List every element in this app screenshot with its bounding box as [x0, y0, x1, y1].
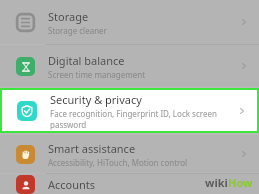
staticText: wiki — [205, 175, 228, 190]
staticText: How — [228, 175, 253, 190]
button[interactable]: Storage — [0, 0, 259, 44]
button[interactable]: Digital balance — [0, 45, 259, 87]
staticText: Storage — [48, 9, 89, 24]
staticText: Screen time management — [48, 69, 146, 80]
button[interactable]: Accounts — [0, 174, 259, 194]
button[interactable]: Smart assistance — [0, 135, 259, 173]
staticText: password — [50, 119, 87, 130]
staticText: Storage cleaner — [48, 25, 107, 36]
button[interactable]: Security & privacy — [2, 90, 257, 131]
staticText: Accessibility, HiTouch, Motion control — [48, 157, 188, 168]
staticText: Smart assistance — [48, 141, 136, 156]
staticText: Security & privacy — [50, 92, 142, 107]
staticText: Face recognition, Fingerprint ID, Lock s… — [50, 108, 217, 119]
staticText: Accounts — [48, 177, 96, 192]
staticText: Digital balance — [48, 53, 125, 68]
